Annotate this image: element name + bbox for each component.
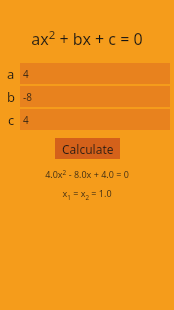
staticText: b [7,88,15,106]
button[interactable]: 4 [20,109,170,130]
staticText: c [8,111,15,129]
staticText: 4 [23,113,29,127]
staticText: Calculate [62,141,114,157]
staticText: -8 [23,90,32,104]
staticText: 4 [23,67,29,81]
button[interactable]: Calculate [55,138,120,159]
staticText: a [7,65,15,83]
staticText: 4.0x2 - 8.0x + 4.0 = 0 [45,168,129,181]
button[interactable]: 4 [20,63,170,84]
staticText: ax2 + bx + c = 0 [31,27,143,50]
staticText: x1 = x2 = 1.0 [62,187,112,202]
button[interactable]: -8 [20,86,170,107]
